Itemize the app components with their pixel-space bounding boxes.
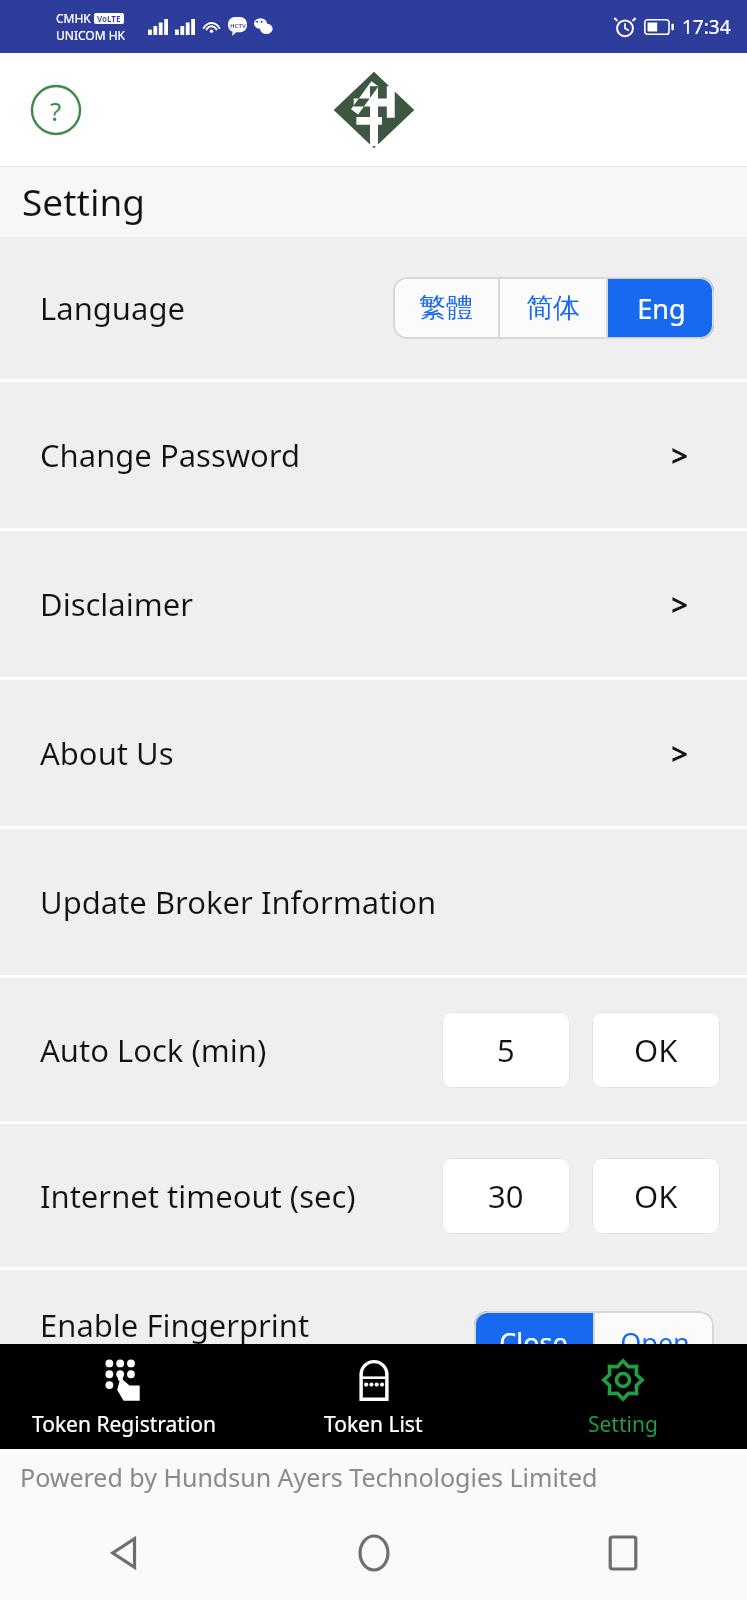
staticText: UNICOM HK	[56, 27, 126, 43]
staticText: 30	[488, 1175, 524, 1217]
staticText: Enable Fingerprint Authentication	[40, 1304, 310, 1386]
staticText: Token List	[324, 1410, 423, 1439]
staticText: OK	[634, 1029, 678, 1071]
staticText: About Us	[40, 732, 174, 774]
button[interactable]: Home	[249, 1505, 498, 1600]
staticText: 简体	[526, 291, 580, 325]
staticText: >	[671, 435, 689, 476]
button[interactable]: Enable Fingerprint Authentication	[0, 1270, 747, 1420]
staticText: Eng	[637, 290, 686, 327]
staticText: 5	[497, 1029, 515, 1071]
staticText: Setting	[22, 176, 146, 226]
button[interactable]: Token List	[249, 1344, 498, 1449]
staticText: 繁體	[419, 291, 473, 325]
button[interactable]: Help	[26, 80, 86, 140]
staticText: HCTV	[230, 22, 246, 30]
staticText: >	[671, 733, 689, 774]
staticText: CMHK	[56, 10, 91, 26]
button[interactable]: Close	[474, 1311, 593, 1373]
staticText: Setting	[588, 1410, 658, 1439]
staticText: OK	[634, 1175, 678, 1217]
staticText: Language	[40, 287, 185, 329]
button[interactable]: Setting	[498, 1344, 747, 1449]
button[interactable]: Disclaimer	[0, 531, 747, 677]
button[interactable]: Language	[0, 237, 747, 379]
button[interactable]: Update Broker Information	[0, 829, 747, 975]
button[interactable]: About Us	[0, 680, 747, 826]
button[interactable]: Internet timeout (sec)	[0, 1124, 747, 1267]
staticText: Powered by Hundsun Ayers Technologies Li…	[20, 1460, 598, 1494]
staticText: Update Broker Information	[40, 881, 437, 923]
button[interactable]: Eng	[608, 277, 714, 339]
staticText: Change Password	[40, 434, 301, 476]
button[interactable]: Change Password	[0, 382, 747, 528]
button[interactable]: OK	[592, 1158, 720, 1234]
button[interactable]: 30	[442, 1158, 570, 1234]
button[interactable]: Auto Lock (min)	[0, 978, 747, 1121]
staticText: Internet timeout (sec)	[40, 1175, 356, 1217]
button[interactable]: Open	[595, 1311, 714, 1373]
button[interactable]: 简体	[500, 277, 606, 339]
staticText: 17:34	[682, 14, 731, 40]
button[interactable]: Token Registration	[0, 1344, 249, 1449]
staticText: Token Registration	[32, 1410, 217, 1439]
staticText: ?	[50, 93, 62, 128]
button[interactable]: Recent apps	[498, 1505, 747, 1600]
button[interactable]: OK	[592, 1012, 720, 1088]
button[interactable]: 5	[442, 1012, 570, 1088]
button[interactable]: 繁體	[393, 277, 498, 339]
staticText: Disclaimer	[40, 583, 194, 625]
staticText: Open	[620, 1324, 690, 1361]
button[interactable]: Back	[0, 1505, 249, 1600]
staticText: Close	[499, 1324, 568, 1361]
staticText: >	[671, 584, 689, 625]
staticText: Auto Lock (min)	[40, 1029, 267, 1071]
staticText: VoLTE	[97, 13, 121, 24]
